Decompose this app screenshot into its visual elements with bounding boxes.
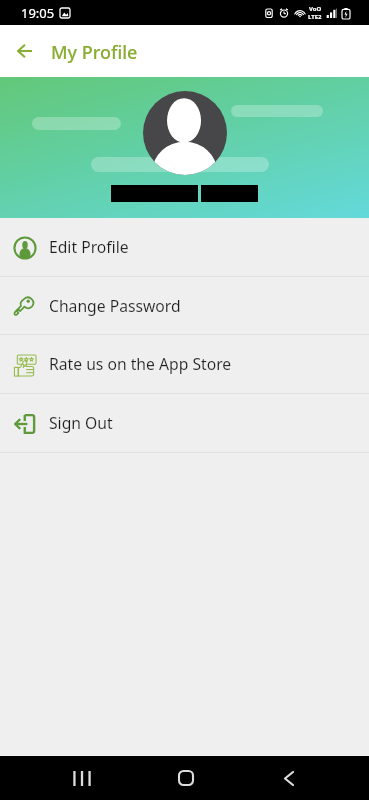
button[interactable]: Back xyxy=(0,25,51,77)
button[interactable]: Change Password xyxy=(0,277,369,335)
button[interactable]: Sign Out xyxy=(0,394,369,453)
staticText: 19:05 xyxy=(21,4,55,22)
staticText: Change Password xyxy=(49,295,181,316)
button[interactable]: Edit Profile xyxy=(0,218,369,277)
button[interactable]: Back xyxy=(267,756,311,800)
staticText: Rate us on the App Store xyxy=(49,353,232,374)
staticText: VoO xyxy=(309,5,322,13)
staticText: LTE2 xyxy=(308,13,322,21)
staticText: Sign Out xyxy=(49,412,113,433)
staticText: Edit Profile xyxy=(49,236,129,257)
staticText: My Profile xyxy=(51,40,138,65)
button[interactable]: Home xyxy=(164,756,208,800)
button[interactable]: Rate us on the App Store xyxy=(0,335,369,394)
button[interactable]: Recent apps xyxy=(60,756,104,800)
